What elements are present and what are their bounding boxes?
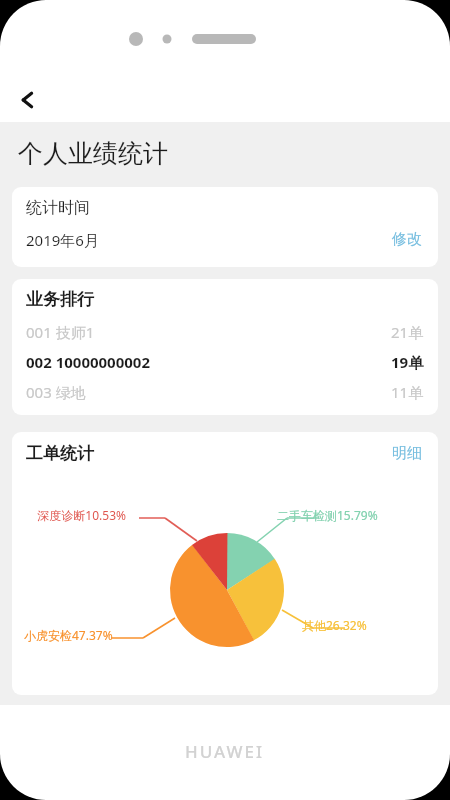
button[interactable]: 明细 [390,442,424,465]
staticText: 001 技师1 [26,322,95,342]
staticText: 小虎安检47.37% [24,627,113,643]
staticText: 19单 [391,352,424,372]
staticText: 2019年6月 [26,230,99,250]
staticText: 统计时间 [26,198,90,218]
staticText: 二手车检测15.79% [277,507,378,523]
button[interactable]: 003 绿地 [12,380,438,403]
button[interactable]: Back [6,78,50,122]
staticText: 深度诊断10.53% [37,507,126,523]
button[interactable]: 修改 [390,228,424,251]
staticText: 002 10000000002 [26,352,151,372]
staticText: 工单统计 [26,443,94,464]
button[interactable]: 001 技师1 [12,320,438,343]
staticText: 21单 [391,322,424,342]
staticText: HUAWEI [185,740,265,763]
button[interactable]: 002 10000000002 [12,349,438,375]
staticText: 明细 [392,444,422,463]
staticText: 11单 [391,382,424,402]
staticText: 个人业绩统计 [18,138,168,169]
staticText: 003 绿地 [26,382,86,402]
staticText: 业务排行 [26,289,94,310]
staticText: 修改 [392,230,422,249]
staticText: 其他26.32% [302,617,367,633]
